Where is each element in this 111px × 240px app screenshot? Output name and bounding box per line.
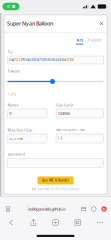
- staticText: 1 of 5: [7, 93, 16, 96]
- staticText: b: [102, 206, 105, 212]
- staticText: Scan NFC & Transfer: [42, 179, 69, 182]
- button[interactable]: Reading list: [80, 204, 87, 214]
- staticText: Max Priority Fee / Gas: [56, 128, 84, 132]
- staticText: Nonce: [7, 102, 18, 108]
- button[interactable]: Account: [100, 204, 107, 214]
- staticText: Max Fee / Gas: [7, 127, 32, 133]
- button[interactable]: New tab: [44, 215, 67, 229]
- button[interactable]: API: [73, 34, 86, 44]
- button[interactable]: bobbyposdab.github.io: [28, 203, 65, 214]
- staticText: 1.5: [58, 137, 63, 140]
- staticText: Gas Limit: [56, 102, 73, 108]
- button[interactable]: Share: [22, 215, 44, 229]
- button[interactable]: Scan NFC & Transfer: [37, 176, 73, 184]
- button[interactable]: Page info: [2, 203, 13, 214]
- button[interactable]: Voice search: [90, 204, 97, 214]
- staticText: API: [76, 37, 82, 43]
- staticText: bobbyposdab.github.io: [28, 206, 65, 212]
- staticText: Transfer: [87, 37, 102, 43]
- button[interactable]: Back: [0, 215, 22, 229]
- staticText: Tokens:: [7, 68, 20, 74]
- button[interactable]: Transfer: [86, 34, 103, 44]
- staticText: Super Nyan Balloon: [7, 20, 53, 27]
- staticText: 0xA7213F83Ab3B5A75B048484d4f4A1C0D: [9, 58, 74, 62]
- staticText: 22.2 GWEI: [9, 137, 23, 140]
- staticText: To:: [7, 49, 12, 55]
- button[interactable]: Menu: [89, 215, 111, 229]
- button[interactable]: Tabs: [67, 215, 89, 229]
- button[interactable]: Close: [97, 19, 106, 28]
- staticText: 0: [9, 111, 11, 116]
- staticText: password: [7, 151, 24, 157]
- staticText: 124556: [58, 111, 70, 116]
- staticText: Scan a contract on the field phone: [31, 187, 79, 191]
